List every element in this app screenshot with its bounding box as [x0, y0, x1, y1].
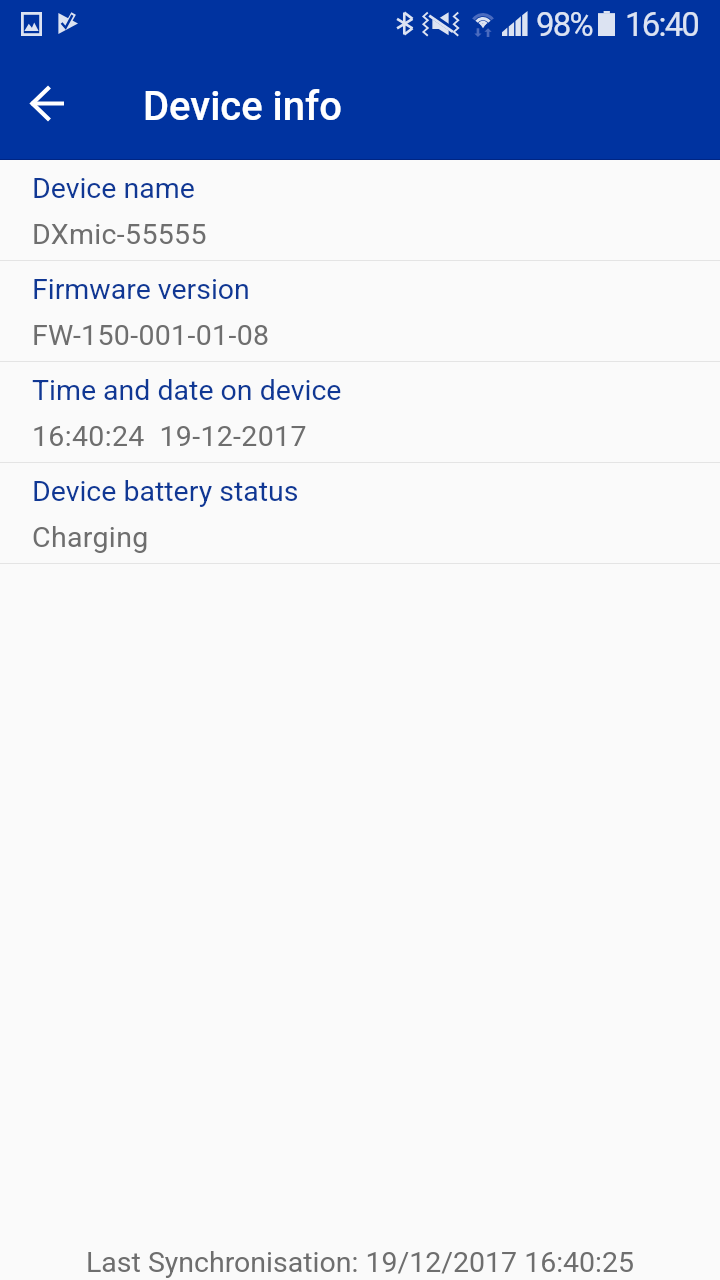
staticText: 16:40:24 19-12-2017 [32, 420, 307, 453]
other: Wi-Fi signal [471, 11, 495, 37]
staticText: 16:40 [625, 5, 699, 44]
button[interactable]: Device battery status [0, 463, 720, 564]
button[interactable]: Firmware version [0, 261, 720, 362]
other: Play Protect [58, 13, 78, 34]
staticText: Last Synchronisation: 19/12/2017 16:40:2… [0, 1246, 720, 1279]
staticText: Device name [32, 172, 195, 205]
other: Sound muted, vibrate [422, 11, 459, 36]
staticText: DXmic-55555 [32, 218, 207, 251]
other: Bluetooth on [396, 12, 414, 35]
other: Screenshot captured [21, 12, 42, 36]
staticText: Time and date on device [32, 374, 342, 407]
staticText: Charging [32, 521, 149, 554]
staticText: 98% [536, 5, 592, 44]
other: Mobile signal, four bars [502, 11, 527, 36]
staticText: Device info [143, 83, 342, 130]
button[interactable]: Device name [0, 160, 720, 261]
button[interactable]: Time and date on device [0, 362, 720, 463]
staticText: Device battery status [32, 475, 299, 508]
button[interactable]: Back [19, 75, 76, 131]
staticText: Firmware version [32, 273, 250, 306]
staticText: FW-150-001-01-08 [32, 319, 270, 352]
other: Battery 98 percent [598, 11, 615, 36]
